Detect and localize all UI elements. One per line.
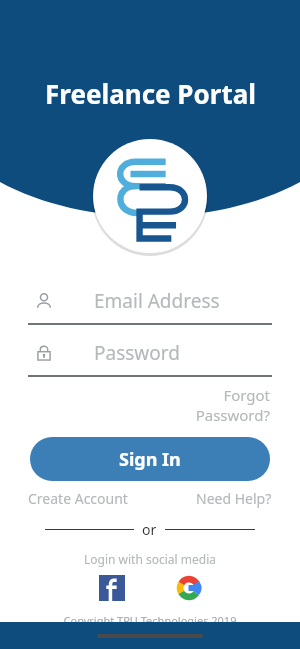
staticText: Create Account — [28, 489, 128, 508]
button[interactable]: Login with Google — [176, 575, 202, 601]
button[interactable]: Sign In — [30, 437, 270, 481]
button[interactable]: Create Account — [28, 489, 128, 508]
button[interactable]: Need Help? — [196, 489, 272, 508]
button[interactable]: Forgot Password? — [195, 385, 270, 425]
staticText: Forgot Password? — [195, 385, 270, 425]
staticText: Login with social media — [0, 551, 300, 567]
staticText: Freelance Portal — [45, 76, 256, 111]
button[interactable]: Email Address — [0, 285, 300, 325]
staticText: Need Help? — [196, 489, 272, 508]
staticText: Password — [94, 340, 180, 366]
staticText: Email Address — [94, 288, 220, 314]
button[interactable]: Login with Facebook — [99, 575, 125, 601]
staticText: Copyright TPU Technologies 2019 — [0, 613, 300, 628]
staticText: Sign In — [119, 447, 181, 472]
button[interactable]: Password — [0, 337, 300, 377]
staticText: or — [142, 520, 157, 539]
